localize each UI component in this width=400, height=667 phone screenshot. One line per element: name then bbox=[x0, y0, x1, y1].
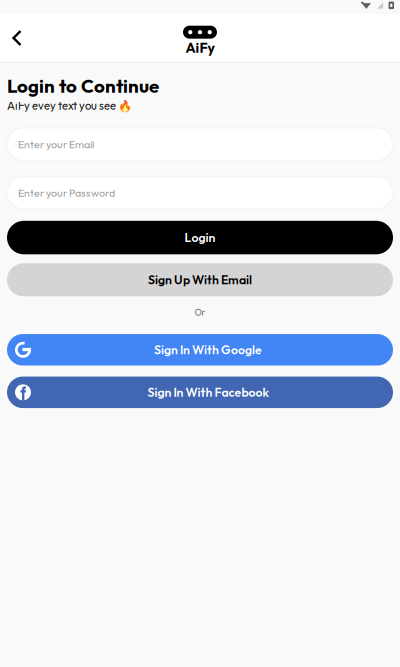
staticText: Enter your Password bbox=[18, 186, 115, 199]
staticText: Sign In With Facebook bbox=[147, 385, 268, 400]
staticText: Or bbox=[194, 306, 205, 318]
staticText: Login bbox=[184, 230, 215, 245]
staticText: Sign Up With Email bbox=[148, 272, 252, 288]
button[interactable]: Sign Up With Email bbox=[7, 263, 393, 296]
staticText: Sign In With Google bbox=[154, 342, 262, 358]
button[interactable]: Enter your Password bbox=[7, 177, 393, 209]
button[interactable]: Sign In With Facebook bbox=[7, 377, 393, 408]
button[interactable]: Back bbox=[0, 14, 34, 62]
button[interactable]: Enter your Email bbox=[7, 128, 393, 161]
button[interactable]: Sign In With Google bbox=[7, 334, 393, 366]
staticText: Enter your Email bbox=[18, 138, 94, 151]
button[interactable]: Login bbox=[7, 221, 393, 254]
staticText: AiFy bbox=[185, 39, 214, 56]
staticText: Login to Continue bbox=[7, 74, 159, 97]
staticText: AiFy evey text you see 🔥 bbox=[7, 98, 132, 113]
